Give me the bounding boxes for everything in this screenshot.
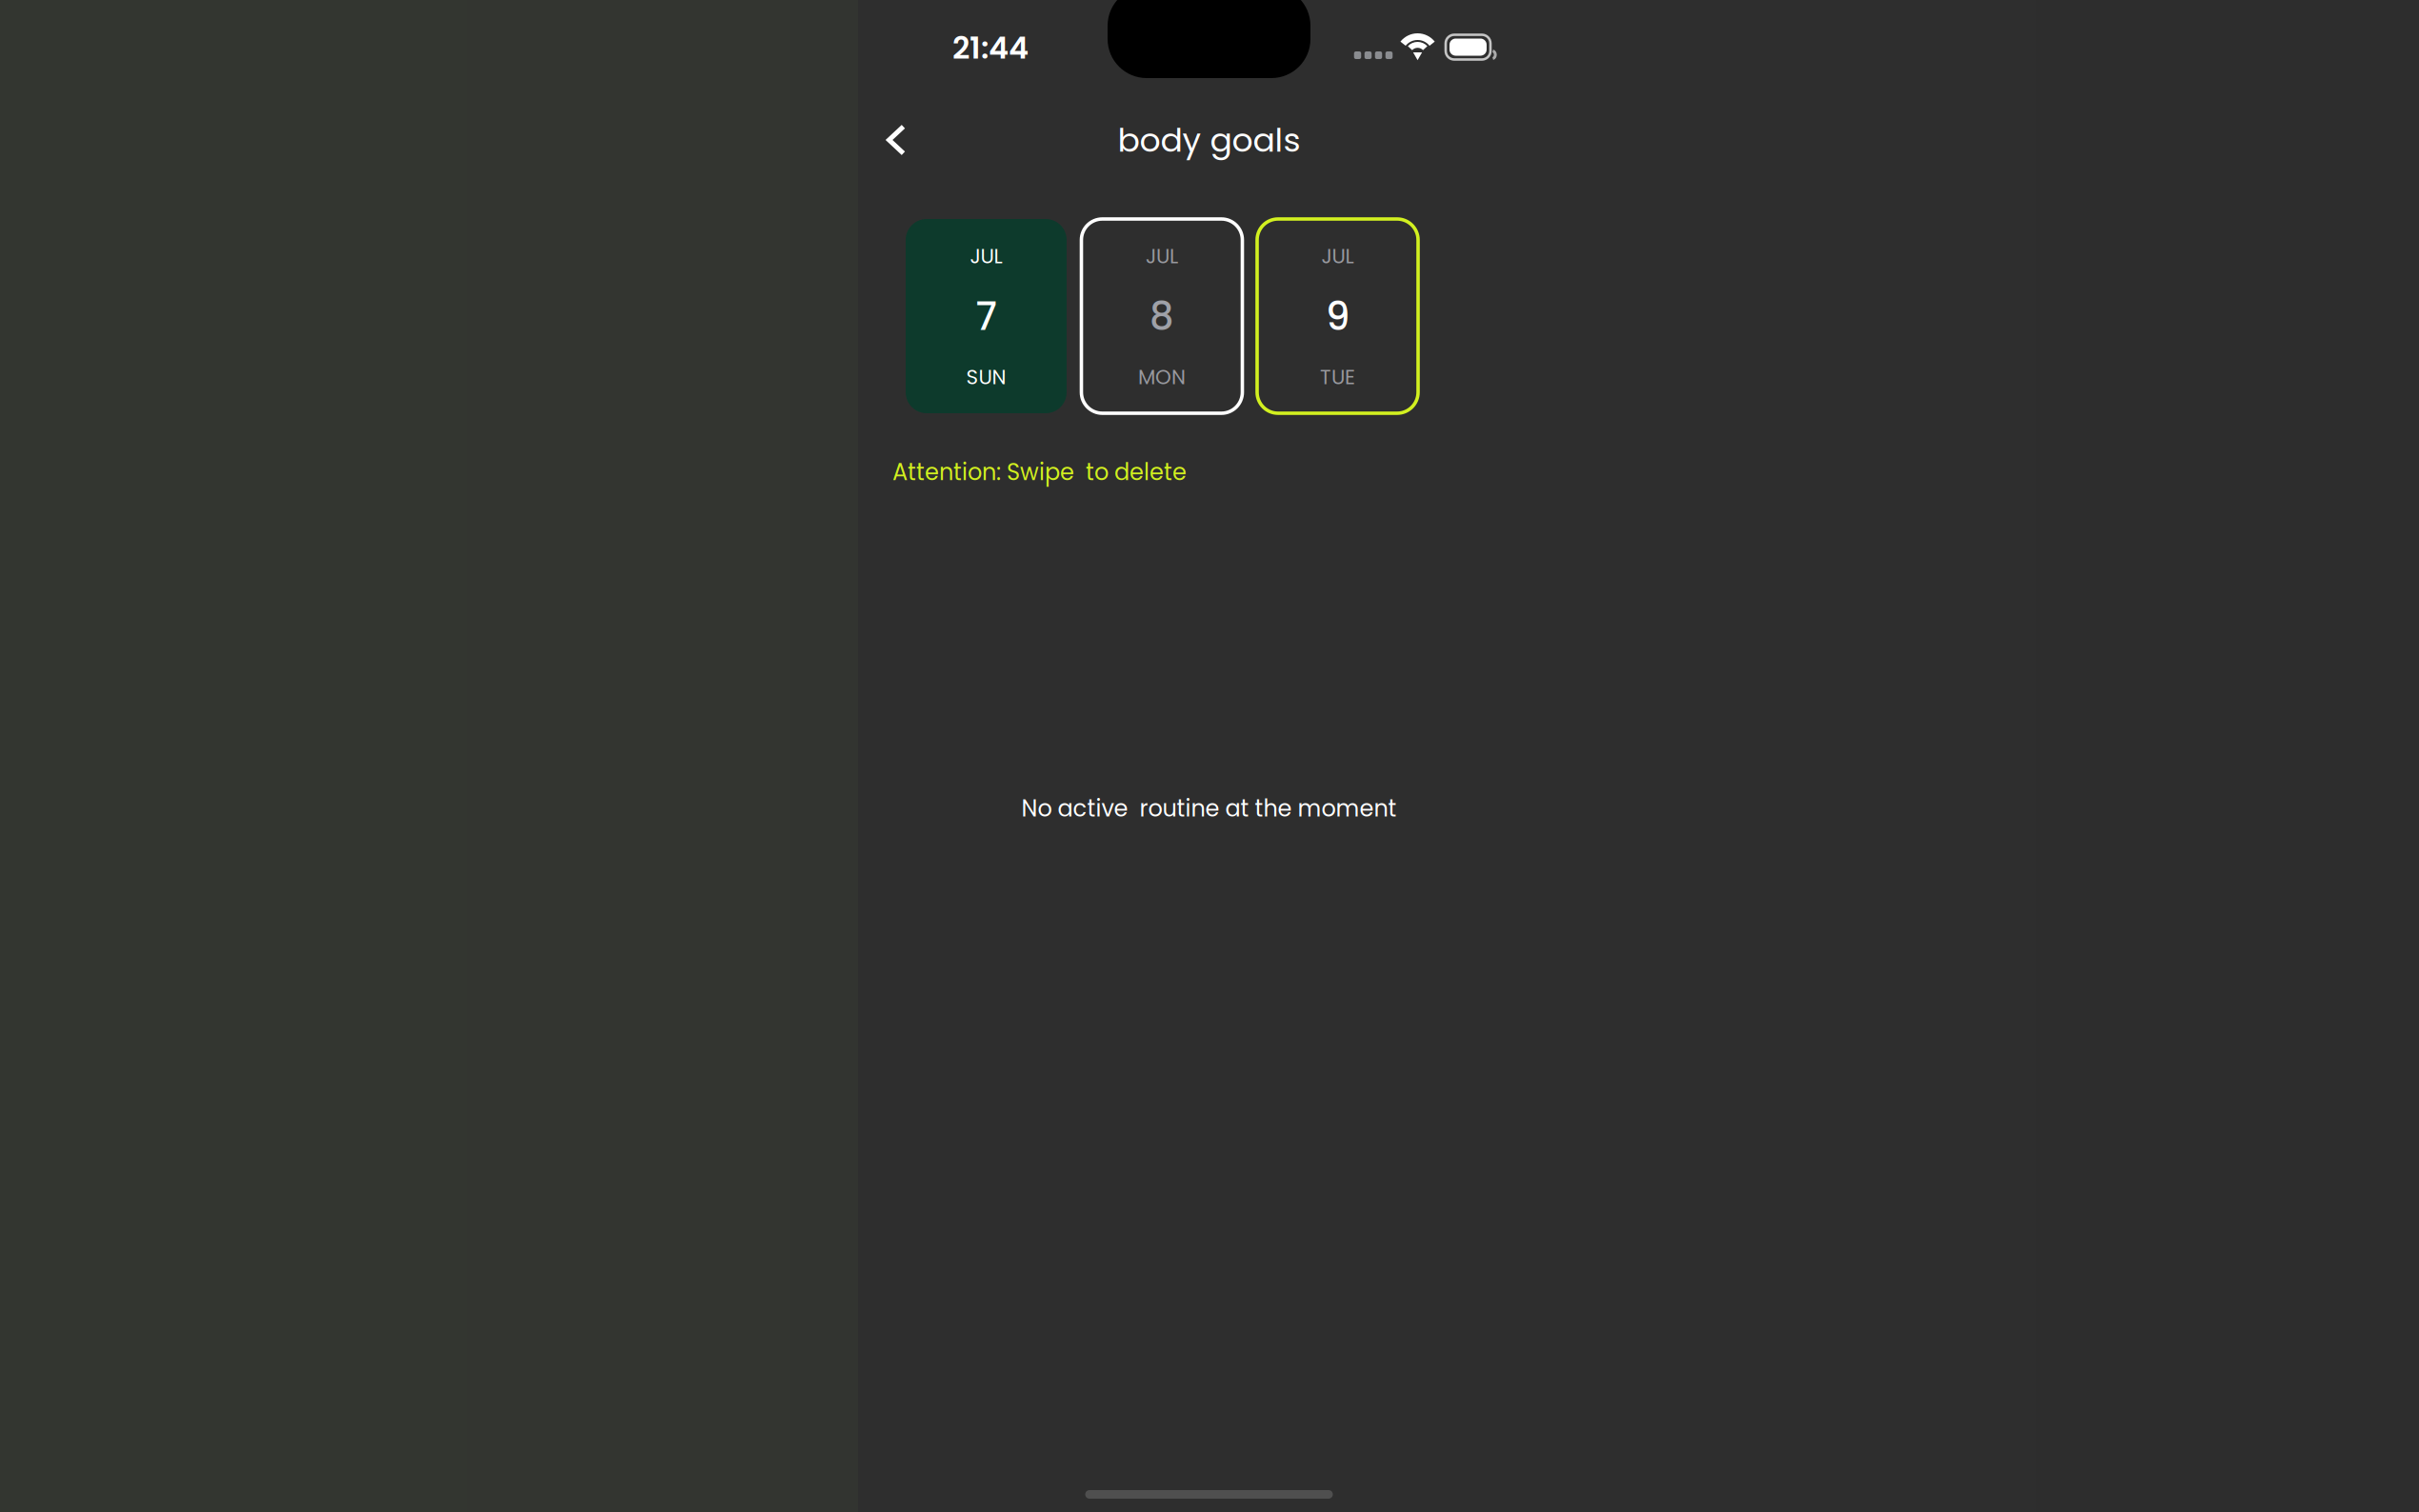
button[interactable]: Back bbox=[858, 124, 925, 183]
staticText: TUE bbox=[1320, 363, 1355, 391]
staticText: 21:44 bbox=[952, 27, 1029, 69]
staticText: Attention: Swipe to delete bbox=[892, 456, 1187, 488]
button[interactable]: JUL bbox=[1081, 219, 1242, 413]
staticText: JUL bbox=[1321, 242, 1354, 270]
staticText: 8 bbox=[1150, 290, 1174, 343]
staticText: JUL bbox=[970, 242, 1002, 270]
staticText: JUL bbox=[1146, 242, 1178, 270]
staticText: 9 bbox=[1326, 290, 1349, 343]
staticText: SUN bbox=[966, 363, 1006, 391]
staticText: MON bbox=[1138, 363, 1186, 391]
staticText: 7 bbox=[976, 290, 997, 343]
button[interactable]: JUL bbox=[1257, 219, 1418, 413]
staticText: No active routine at the moment bbox=[1021, 793, 1397, 825]
button[interactable]: JUL bbox=[906, 219, 1067, 413]
staticText: body goals bbox=[1118, 117, 1300, 163]
